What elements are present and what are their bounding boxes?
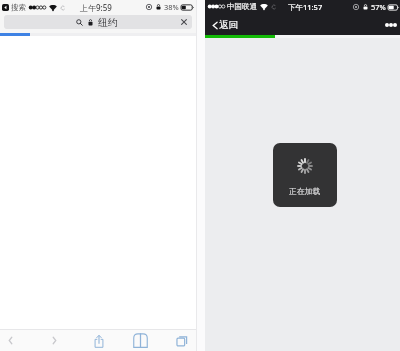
staticText: 57% — [371, 2, 386, 12]
button[interactable]: More options — [385, 23, 397, 27]
button[interactable]: Bookmarks — [121, 330, 159, 351]
button[interactable]: 返回 — [212, 19, 238, 31]
staticText: 38% — [164, 2, 179, 12]
staticText: 搜索 — [11, 3, 26, 12]
staticText: 中国联通 — [227, 2, 257, 11]
button[interactable]: Tabs — [163, 330, 201, 351]
button[interactable]: Clear — [180, 18, 188, 26]
staticText: 下午11:57 — [288, 2, 323, 12]
staticText: 正在加载 — [289, 186, 321, 196]
button[interactable]: Forward — [35, 330, 73, 351]
staticText: 上午9:59 — [80, 2, 112, 13]
staticText: 纽约 — [98, 16, 118, 29]
staticText: 返回 — [219, 19, 238, 31]
button[interactable]: Back — [0, 330, 29, 351]
button[interactable]: Share — [80, 330, 118, 351]
button[interactable]: 纽约 — [4, 15, 192, 29]
